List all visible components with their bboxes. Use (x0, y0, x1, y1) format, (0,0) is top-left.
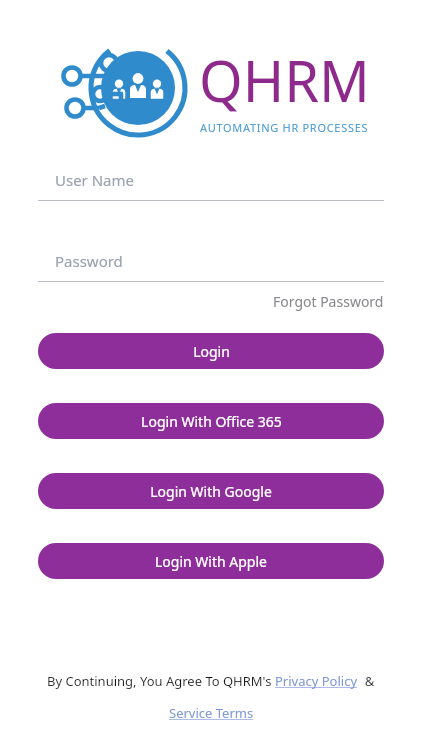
staticText: Privacy Policy (275, 672, 358, 690)
staticText: Forgot Password (273, 292, 384, 311)
button[interactable]: Login With Apple (38, 543, 384, 579)
staticText: AUTOMATING HR PROCESSES (200, 120, 369, 135)
staticText: Login (193, 342, 230, 361)
button[interactable]: Privacy Policy (275, 672, 358, 690)
button[interactable]: Forgot Password (273, 290, 384, 313)
button[interactable]: User Name (38, 160, 384, 201)
button[interactable]: Service Terms (169, 704, 254, 722)
staticText: Login With Office 365 (141, 412, 282, 431)
button[interactable]: Login With Office 365 (38, 403, 384, 439)
button[interactable]: Login (38, 333, 384, 369)
button[interactable]: Login With Google (38, 473, 384, 509)
button[interactable]: Password (38, 241, 384, 282)
staticText: QHRM (199, 42, 370, 118)
staticText: Password (55, 251, 123, 271)
staticText: By Continuing, You Agree To QHRM's (47, 672, 275, 690)
staticText: Login With Apple (155, 552, 267, 571)
staticText: User Name (55, 170, 135, 190)
staticText: Login With Google (150, 482, 272, 501)
staticText: Service Terms (169, 704, 254, 722)
staticText: & (358, 672, 375, 690)
